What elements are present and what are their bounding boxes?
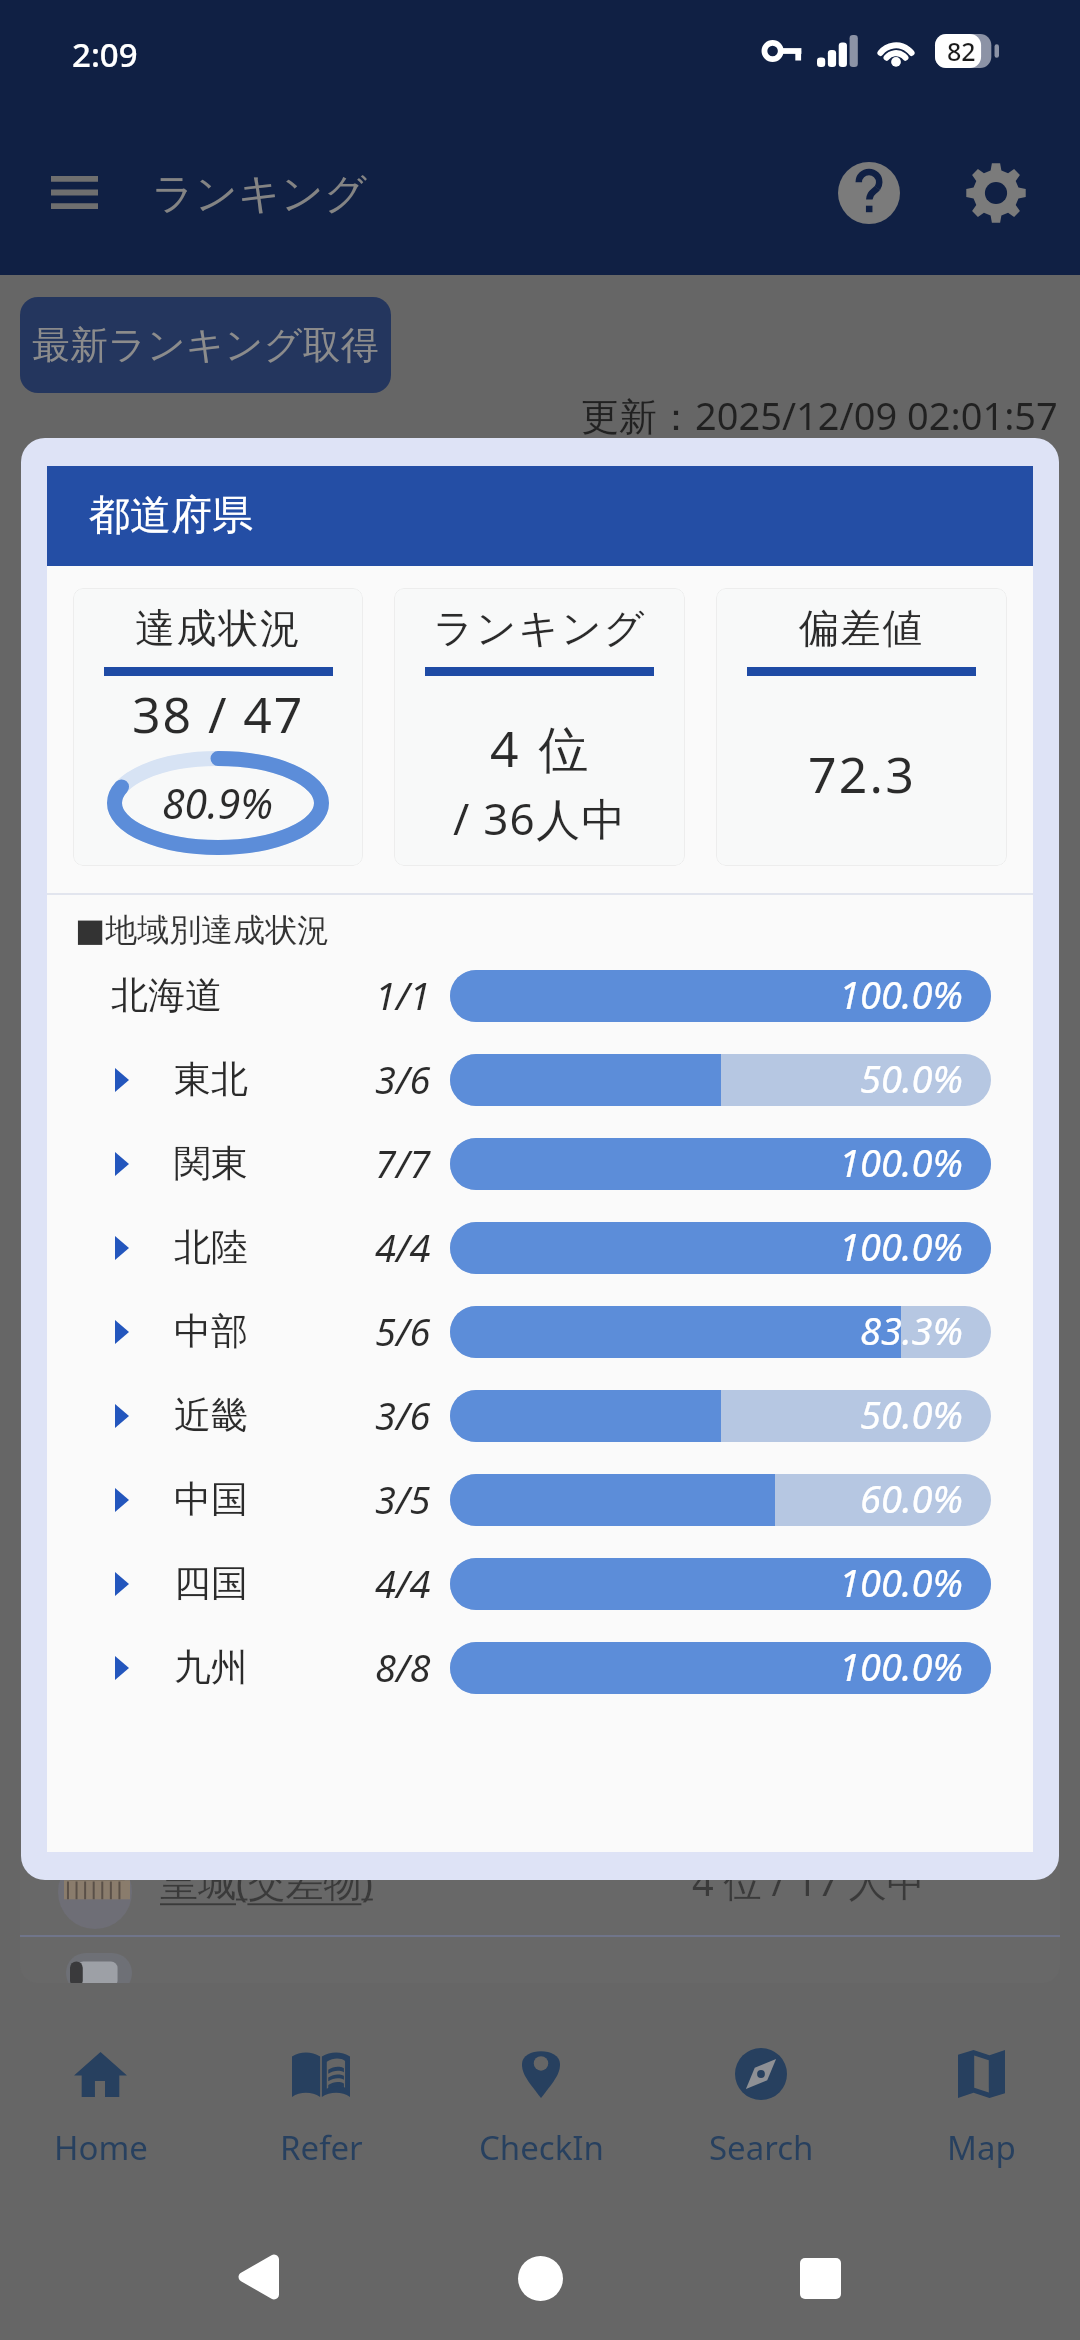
staticText: 4 位 / 17 人中 <box>692 1855 925 1907</box>
staticText: 100.0% <box>839 1138 963 1188</box>
staticText: 100.0% <box>839 970 963 1020</box>
button[interactable]: 中国 <box>47 1458 1033 1542</box>
staticText: Search <box>709 2125 814 2170</box>
button[interactable]: 中部 <box>47 1290 1033 1374</box>
staticText: ランキング <box>152 168 367 221</box>
staticText: 関東 <box>174 1140 248 1187</box>
button[interactable]: Help <box>838 162 900 224</box>
staticText: 4/4 <box>375 1557 431 1609</box>
button[interactable]: 達成状況 <box>73 588 363 866</box>
staticText: 5/6 <box>375 1305 431 1357</box>
button[interactable]: Map <box>871 2028 1080 2173</box>
staticText: 九州 <box>174 1644 248 1691</box>
button[interactable]: CheckIn <box>431 2028 651 2173</box>
staticText: 3/6 <box>375 1053 431 1105</box>
staticText: 82 <box>947 34 976 68</box>
staticText: Refer <box>280 2125 363 2170</box>
button[interactable]: Recents <box>750 2208 890 2340</box>
staticText: 4/4 <box>375 1221 431 1273</box>
button[interactable]: 最新ランキング取得 <box>20 297 391 393</box>
staticText: 72.3 <box>808 740 916 808</box>
staticText: / 36人中 <box>453 788 627 848</box>
staticText: 83.3% <box>860 1306 963 1356</box>
staticText: 3/5 <box>375 1473 431 1525</box>
staticText: 8/8 <box>375 1641 431 1693</box>
staticText: 四国 <box>174 1560 248 1607</box>
button[interactable]: 偏差値 <box>716 588 1007 866</box>
button[interactable]: Settings <box>966 163 1026 223</box>
button[interactable]: 近畿 <box>47 1374 1033 1458</box>
staticText: ランキング <box>433 603 647 653</box>
staticText: 更新：2025/12/09 02:01:57 <box>581 389 1058 441</box>
staticText: 50.0% <box>860 1390 963 1440</box>
staticText: 中部 <box>174 1308 248 1355</box>
staticText: Map <box>947 2125 1016 2170</box>
staticText: 4 位 <box>490 714 593 782</box>
staticText: Home <box>54 2125 148 2170</box>
staticText: 80.9% <box>162 775 274 831</box>
button[interactable]: Back <box>188 2207 328 2340</box>
button[interactable]: ランキング <box>394 588 685 866</box>
staticText: 中国 <box>174 1476 248 1523</box>
staticText: 1/1 <box>375 969 431 1021</box>
button[interactable]: 北陸 <box>47 1206 1033 1290</box>
button[interactable]: Search <box>651 2028 871 2173</box>
staticText: 50.0% <box>860 1054 963 1104</box>
staticText: 7/7 <box>375 1137 431 1189</box>
staticText: 達成状況 <box>135 603 302 653</box>
staticText: 38 / 47 <box>132 680 305 748</box>
button[interactable]: 北海道 <box>47 954 1033 1038</box>
button[interactable]: Home <box>470 2208 610 2340</box>
button[interactable]: Menu <box>28 151 121 234</box>
staticText: ■地域別達成状況 <box>75 910 330 950</box>
staticText: 北陸 <box>174 1224 248 1271</box>
staticText: 3/6 <box>375 1389 431 1441</box>
staticText: 100.0% <box>839 1642 963 1692</box>
staticText: 皇城(交差物) <box>160 1855 373 1907</box>
button[interactable]: 東北 <box>47 1038 1033 1122</box>
staticText: 都道府県 <box>89 490 253 542</box>
staticText: 北海道 <box>111 972 222 1019</box>
staticText: 東北 <box>174 1056 248 1103</box>
button[interactable]: Home <box>0 2028 211 2173</box>
button[interactable]: 関東 <box>47 1122 1033 1206</box>
button[interactable]: Refer <box>211 2028 431 2173</box>
staticText: 100.0% <box>839 1222 963 1272</box>
button[interactable]: 四国 <box>47 1542 1033 1626</box>
staticText: CheckIn <box>479 2125 604 2170</box>
staticText: 近畿 <box>174 1392 248 1439</box>
button[interactable]: 九州 <box>47 1626 1033 1710</box>
staticText: 2:09 <box>72 32 138 77</box>
staticText: 最新ランキング取得 <box>32 321 379 369</box>
staticText: 60.0% <box>860 1474 963 1524</box>
staticText: 100.0% <box>839 1558 963 1608</box>
staticText: 偏差値 <box>799 603 925 653</box>
